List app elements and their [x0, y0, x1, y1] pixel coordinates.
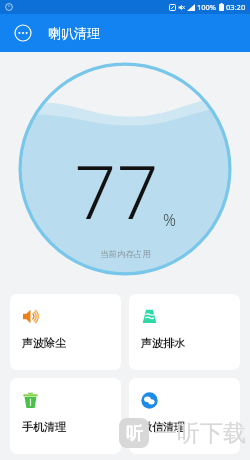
button[interactable]: 声波排水	[129, 294, 240, 370]
staticText: 声波除尘	[22, 336, 66, 350]
button[interactable]: 手机清理	[10, 378, 121, 454]
staticText: 听	[126, 423, 143, 444]
staticText: 手机清理	[22, 420, 66, 434]
button[interactable]: Menu	[14, 24, 32, 42]
staticText: 77	[74, 140, 159, 241]
staticText: 一听下载	[154, 419, 246, 448]
staticText: 当前内存占用	[100, 249, 151, 260]
button[interactable]: 声波除尘	[10, 294, 121, 370]
button[interactable]: 微信清理	[129, 378, 240, 454]
staticText: 100%	[197, 2, 217, 12]
staticText: 喇叭清理	[48, 25, 100, 41]
staticText: 微信清理	[141, 420, 185, 434]
staticText: %	[163, 209, 176, 231]
staticText: 03:20	[226, 2, 246, 12]
staticText: 声波排水	[141, 336, 185, 350]
